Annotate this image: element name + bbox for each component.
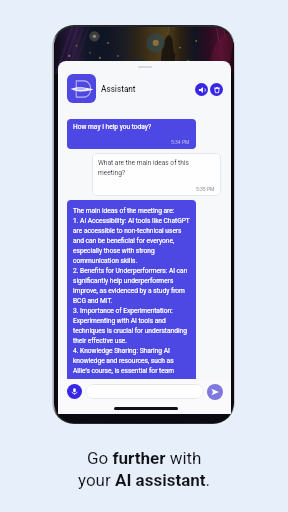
button[interactable] [85, 384, 204, 399]
staticText: 5:34 PM [171, 139, 190, 145]
staticText: What are the main ideas of this meeting? [98, 159, 215, 176]
button[interactable]: Delete conversation [210, 83, 223, 96]
button[interactable]: The main ideas of the meeting are: 1. AI… [67, 200, 196, 379]
button[interactable]: Mute [195, 83, 208, 96]
staticText: The main ideas of the meeting are: 1. AI… [73, 207, 190, 374]
button[interactable]: How may I help you today? [67, 119, 196, 149]
staticText: Assistant [101, 84, 136, 94]
button[interactable]: Voice input [67, 384, 82, 399]
button[interactable]: Assistant [67, 74, 96, 103]
button[interactable]: Send [207, 384, 223, 400]
staticText: your AI assistant. [78, 470, 210, 490]
button[interactable]: What are the main ideas of this meeting? [92, 153, 221, 196]
staticText: How may I help you today? [73, 123, 152, 131]
staticText: 5:35 PM [196, 186, 215, 192]
staticText: Go further with [87, 448, 202, 468]
